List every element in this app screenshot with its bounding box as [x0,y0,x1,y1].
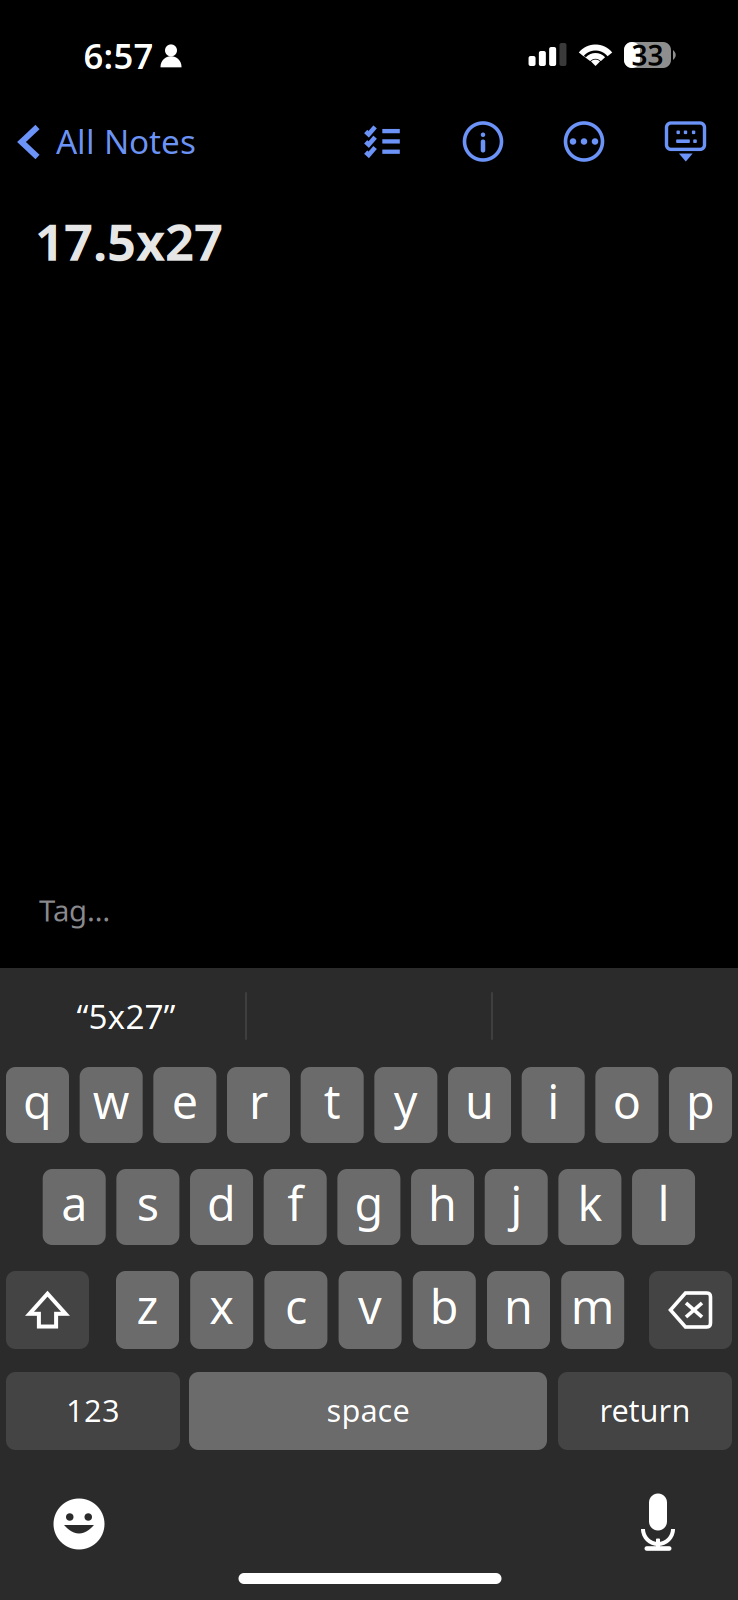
button[interactable]: Checklist [355,113,411,169]
button[interactable]: return [558,1372,732,1450]
staticText: m [571,1275,615,1337]
button[interactable]: h [411,1169,474,1245]
staticText: v [358,1275,382,1337]
button[interactable]: Delete [649,1271,732,1349]
button[interactable]: d [190,1169,253,1245]
staticText: g [354,1172,383,1234]
button[interactable]: r [227,1067,290,1143]
staticText: z [136,1275,158,1337]
button[interactable]: f [264,1169,327,1245]
staticText: k [577,1172,602,1234]
staticText: o [613,1070,641,1132]
staticText: return [599,1390,690,1430]
button[interactable]: w [80,1067,143,1143]
button[interactable]: y [374,1067,437,1143]
staticText: x [209,1275,234,1337]
staticText: d [207,1172,236,1234]
staticText: c [285,1275,307,1337]
button[interactable]: Info [455,113,511,169]
button[interactable]: s [116,1169,179,1245]
staticText: w [93,1070,130,1132]
button[interactable]: e [153,1067,216,1143]
staticText: Tag… [39,890,110,929]
button[interactable]: z [116,1271,179,1349]
staticText: 123 [66,1390,120,1430]
button[interactable]: Dictation [621,1485,695,1559]
button[interactable]: n [487,1271,550,1349]
button[interactable]: p [669,1067,732,1143]
staticText: j [510,1172,522,1234]
staticText: f [287,1172,303,1234]
staticText: All Notes [56,119,196,163]
staticText: 17.5x27 [35,207,223,275]
button[interactable]: Dismiss keyboard [658,115,714,171]
staticText: l [658,1172,670,1234]
staticText: p [686,1070,715,1132]
button[interactable]: x [190,1271,253,1349]
staticText: s [137,1172,159,1234]
staticText: “5x27” [76,994,175,1038]
staticText: q [23,1070,52,1132]
staticText: h [428,1172,457,1234]
button[interactable]: b [413,1271,476,1349]
button[interactable]: “5x27” [3,979,249,1053]
button[interactable]: q [6,1067,69,1143]
button[interactable]: v [339,1271,402,1349]
staticText: b [430,1275,459,1337]
staticText: 6:57 [83,32,153,78]
staticText: a [61,1172,87,1234]
staticText: e [172,1070,198,1132]
button[interactable]: i [522,1067,585,1143]
button[interactable]: c [264,1271,327,1349]
button[interactable]: Shift [6,1271,89,1349]
button[interactable]: a [43,1169,106,1245]
button[interactable]: More [556,113,612,169]
staticText: u [465,1070,494,1132]
button[interactable]: t [301,1067,364,1143]
staticText: 33 [631,36,663,74]
button[interactable]: g [337,1169,400,1245]
button[interactable]: Emoji [42,1487,116,1561]
staticText: t [324,1070,341,1132]
staticText: space [326,1390,409,1430]
button[interactable]: k [558,1169,621,1245]
button[interactable]: 123 [6,1372,180,1450]
button[interactable]: u [448,1067,511,1143]
staticText: y [394,1070,418,1132]
staticText: n [504,1275,533,1337]
button[interactable]: m [561,1271,624,1349]
button[interactable]: space [189,1372,547,1450]
button[interactable]: l [632,1169,695,1245]
staticText: i [547,1070,559,1132]
staticText: r [249,1070,268,1132]
button[interactable]: o [595,1067,658,1143]
button[interactable]: j [485,1169,548,1245]
button[interactable]: All Notes [0,111,190,173]
